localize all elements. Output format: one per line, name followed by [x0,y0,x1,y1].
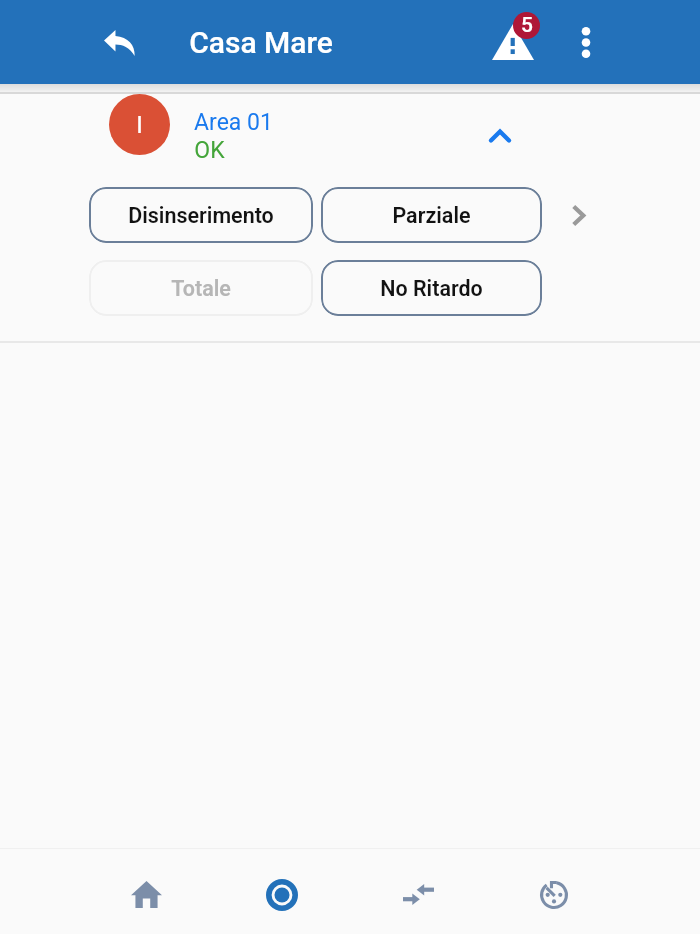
button[interactable]: Parziale [321,187,542,243]
button[interactable]: Back [91,15,147,71]
button[interactable]: Next [555,192,601,238]
staticText: No Ritardo [380,276,483,301]
staticText: Disinserimento [128,203,274,228]
staticText: OK [194,137,225,164]
staticText: Totale [171,276,231,301]
button[interactable]: Collapse [476,112,524,160]
button[interactable]: More options [558,14,614,70]
staticText: Casa Mare [189,25,333,60]
button[interactable]: No Ritardo [321,260,542,316]
button[interactable]: Scenarios [350,849,486,934]
staticText: Area 01 [194,109,273,136]
staticText: I [136,111,143,139]
button[interactable]: Timers [486,849,622,934]
button[interactable]: Areas [214,849,350,934]
button[interactable]: Home [78,849,214,934]
staticText: Parziale [392,203,471,228]
button[interactable]: Disinserimento [89,187,313,243]
button[interactable]: Warnings [483,4,550,68]
button[interactable]: Totale [89,260,313,316]
staticText: 5 [521,13,533,38]
